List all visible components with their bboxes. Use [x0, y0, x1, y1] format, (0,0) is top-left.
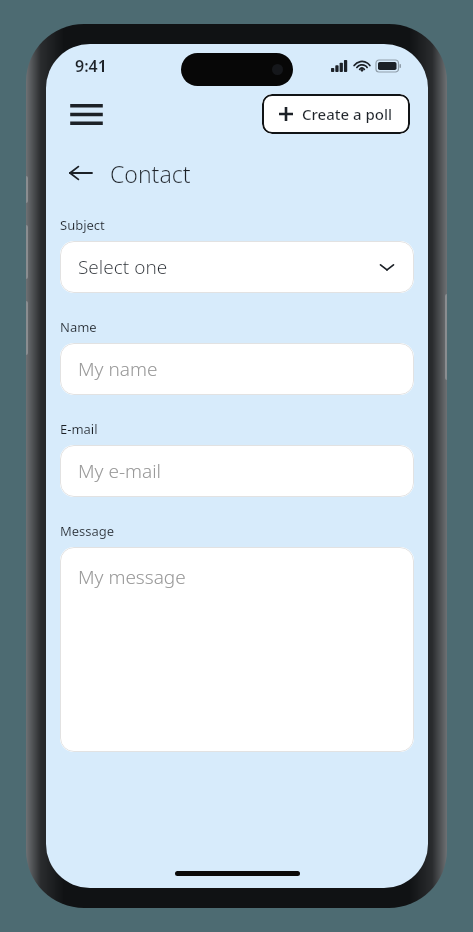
button[interactable]: Menu: [66, 94, 106, 134]
staticText: Create a poll: [302, 104, 393, 124]
button[interactable]: Back: [64, 156, 98, 190]
staticText: E-mail: [60, 420, 98, 438]
staticText: 9:41: [75, 55, 107, 77]
button[interactable]: Select one: [60, 241, 414, 293]
staticText: Contact: [110, 158, 191, 189]
staticText: My name: [78, 356, 158, 382]
button[interactable]: My message: [60, 547, 414, 752]
staticText: Message: [60, 522, 115, 540]
staticText: Subject: [60, 216, 105, 234]
staticText: Name: [60, 318, 97, 336]
staticText: My e-mail: [78, 458, 161, 484]
staticText: Select one: [78, 254, 168, 280]
button[interactable]: Create a poll: [262, 94, 410, 134]
button[interactable]: My name: [60, 343, 414, 395]
staticText: My message: [78, 564, 186, 590]
button[interactable]: My e-mail: [60, 445, 414, 497]
